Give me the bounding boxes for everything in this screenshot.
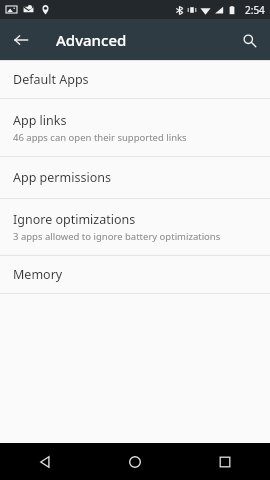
button[interactable]: Back bbox=[6, 25, 36, 55]
staticText: 3 apps allowed to ignore battery optimiz… bbox=[13, 230, 221, 243]
staticText: 46 apps can open their supported links bbox=[13, 131, 187, 144]
button[interactable]: Recents bbox=[180, 443, 270, 480]
button[interactable]: App links bbox=[0, 99, 270, 156]
staticText: Advanced bbox=[56, 30, 127, 50]
staticText: Default Apps bbox=[13, 71, 89, 88]
staticText: 2:54 bbox=[245, 3, 265, 17]
button[interactable]: Memory bbox=[0, 256, 270, 293]
button[interactable]: Home bbox=[90, 443, 180, 480]
button[interactable]: App permissions bbox=[0, 157, 270, 198]
button[interactable]: Default Apps bbox=[0, 61, 270, 98]
button[interactable]: Ignore optimizations bbox=[0, 199, 270, 255]
staticText: App links bbox=[13, 112, 67, 129]
staticText: Memory bbox=[13, 266, 63, 283]
button[interactable]: Back bbox=[0, 443, 90, 480]
staticText: Ignore optimizations bbox=[13, 211, 136, 228]
staticText: App permissions bbox=[13, 169, 111, 186]
button[interactable]: Search bbox=[234, 25, 264, 55]
